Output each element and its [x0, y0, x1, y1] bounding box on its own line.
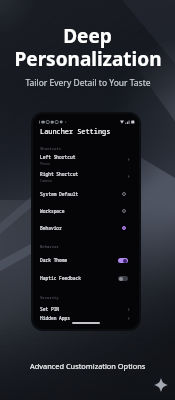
- staticText: Tailor Every Detail to Your Taste: [25, 77, 151, 89]
- other: Open: [127, 317, 130, 320]
- button[interactable]: Set PIN: [33, 303, 139, 315]
- staticText: Hidden Apps: [40, 315, 71, 321]
- staticText: Shortcuts: [40, 146, 62, 151]
- button[interactable]: Advanced Customization Options: [30, 361, 146, 371]
- staticText: Set PIN: [40, 306, 60, 312]
- other: Open: [127, 175, 130, 178]
- staticText: Workspace: [40, 208, 65, 214]
- button[interactable]: Behavior: [33, 222, 139, 234]
- staticText: Launcher Settings: [40, 127, 111, 136]
- button[interactable]: AI sparkle: [154, 378, 168, 392]
- other: Dark Theme toggle: [118, 258, 128, 263]
- button[interactable]: Left Shortcut: [33, 153, 139, 166]
- staticText: Behavior: [40, 225, 62, 231]
- staticText: Left Shortcut: [40, 154, 76, 160]
- staticText: Deep: [63, 23, 112, 49]
- staticText: Phone: [40, 161, 50, 165]
- staticText: System Default: [40, 191, 79, 197]
- other: Haptic Feedback toggle: [118, 276, 128, 281]
- staticText: Personalization: [14, 46, 162, 72]
- other: Open: [127, 158, 130, 161]
- button[interactable]: Haptic Feedback: [33, 272, 139, 284]
- button[interactable]: System Default: [33, 188, 139, 200]
- button[interactable]: Dark Theme: [33, 254, 139, 266]
- staticText: Behavior: [40, 244, 59, 249]
- staticText: Camera: [40, 178, 52, 182]
- button[interactable]: Right Shortcut: [33, 170, 139, 183]
- button[interactable]: Hidden Apps: [33, 312, 139, 324]
- staticText: Security: [40, 295, 59, 300]
- button[interactable]: Workspace: [33, 205, 139, 217]
- staticText: Dark Theme: [40, 257, 68, 263]
- staticText: Right Shortcut: [40, 171, 79, 177]
- other: Open: [127, 308, 130, 311]
- staticText: Haptic Feedback: [40, 275, 81, 281]
